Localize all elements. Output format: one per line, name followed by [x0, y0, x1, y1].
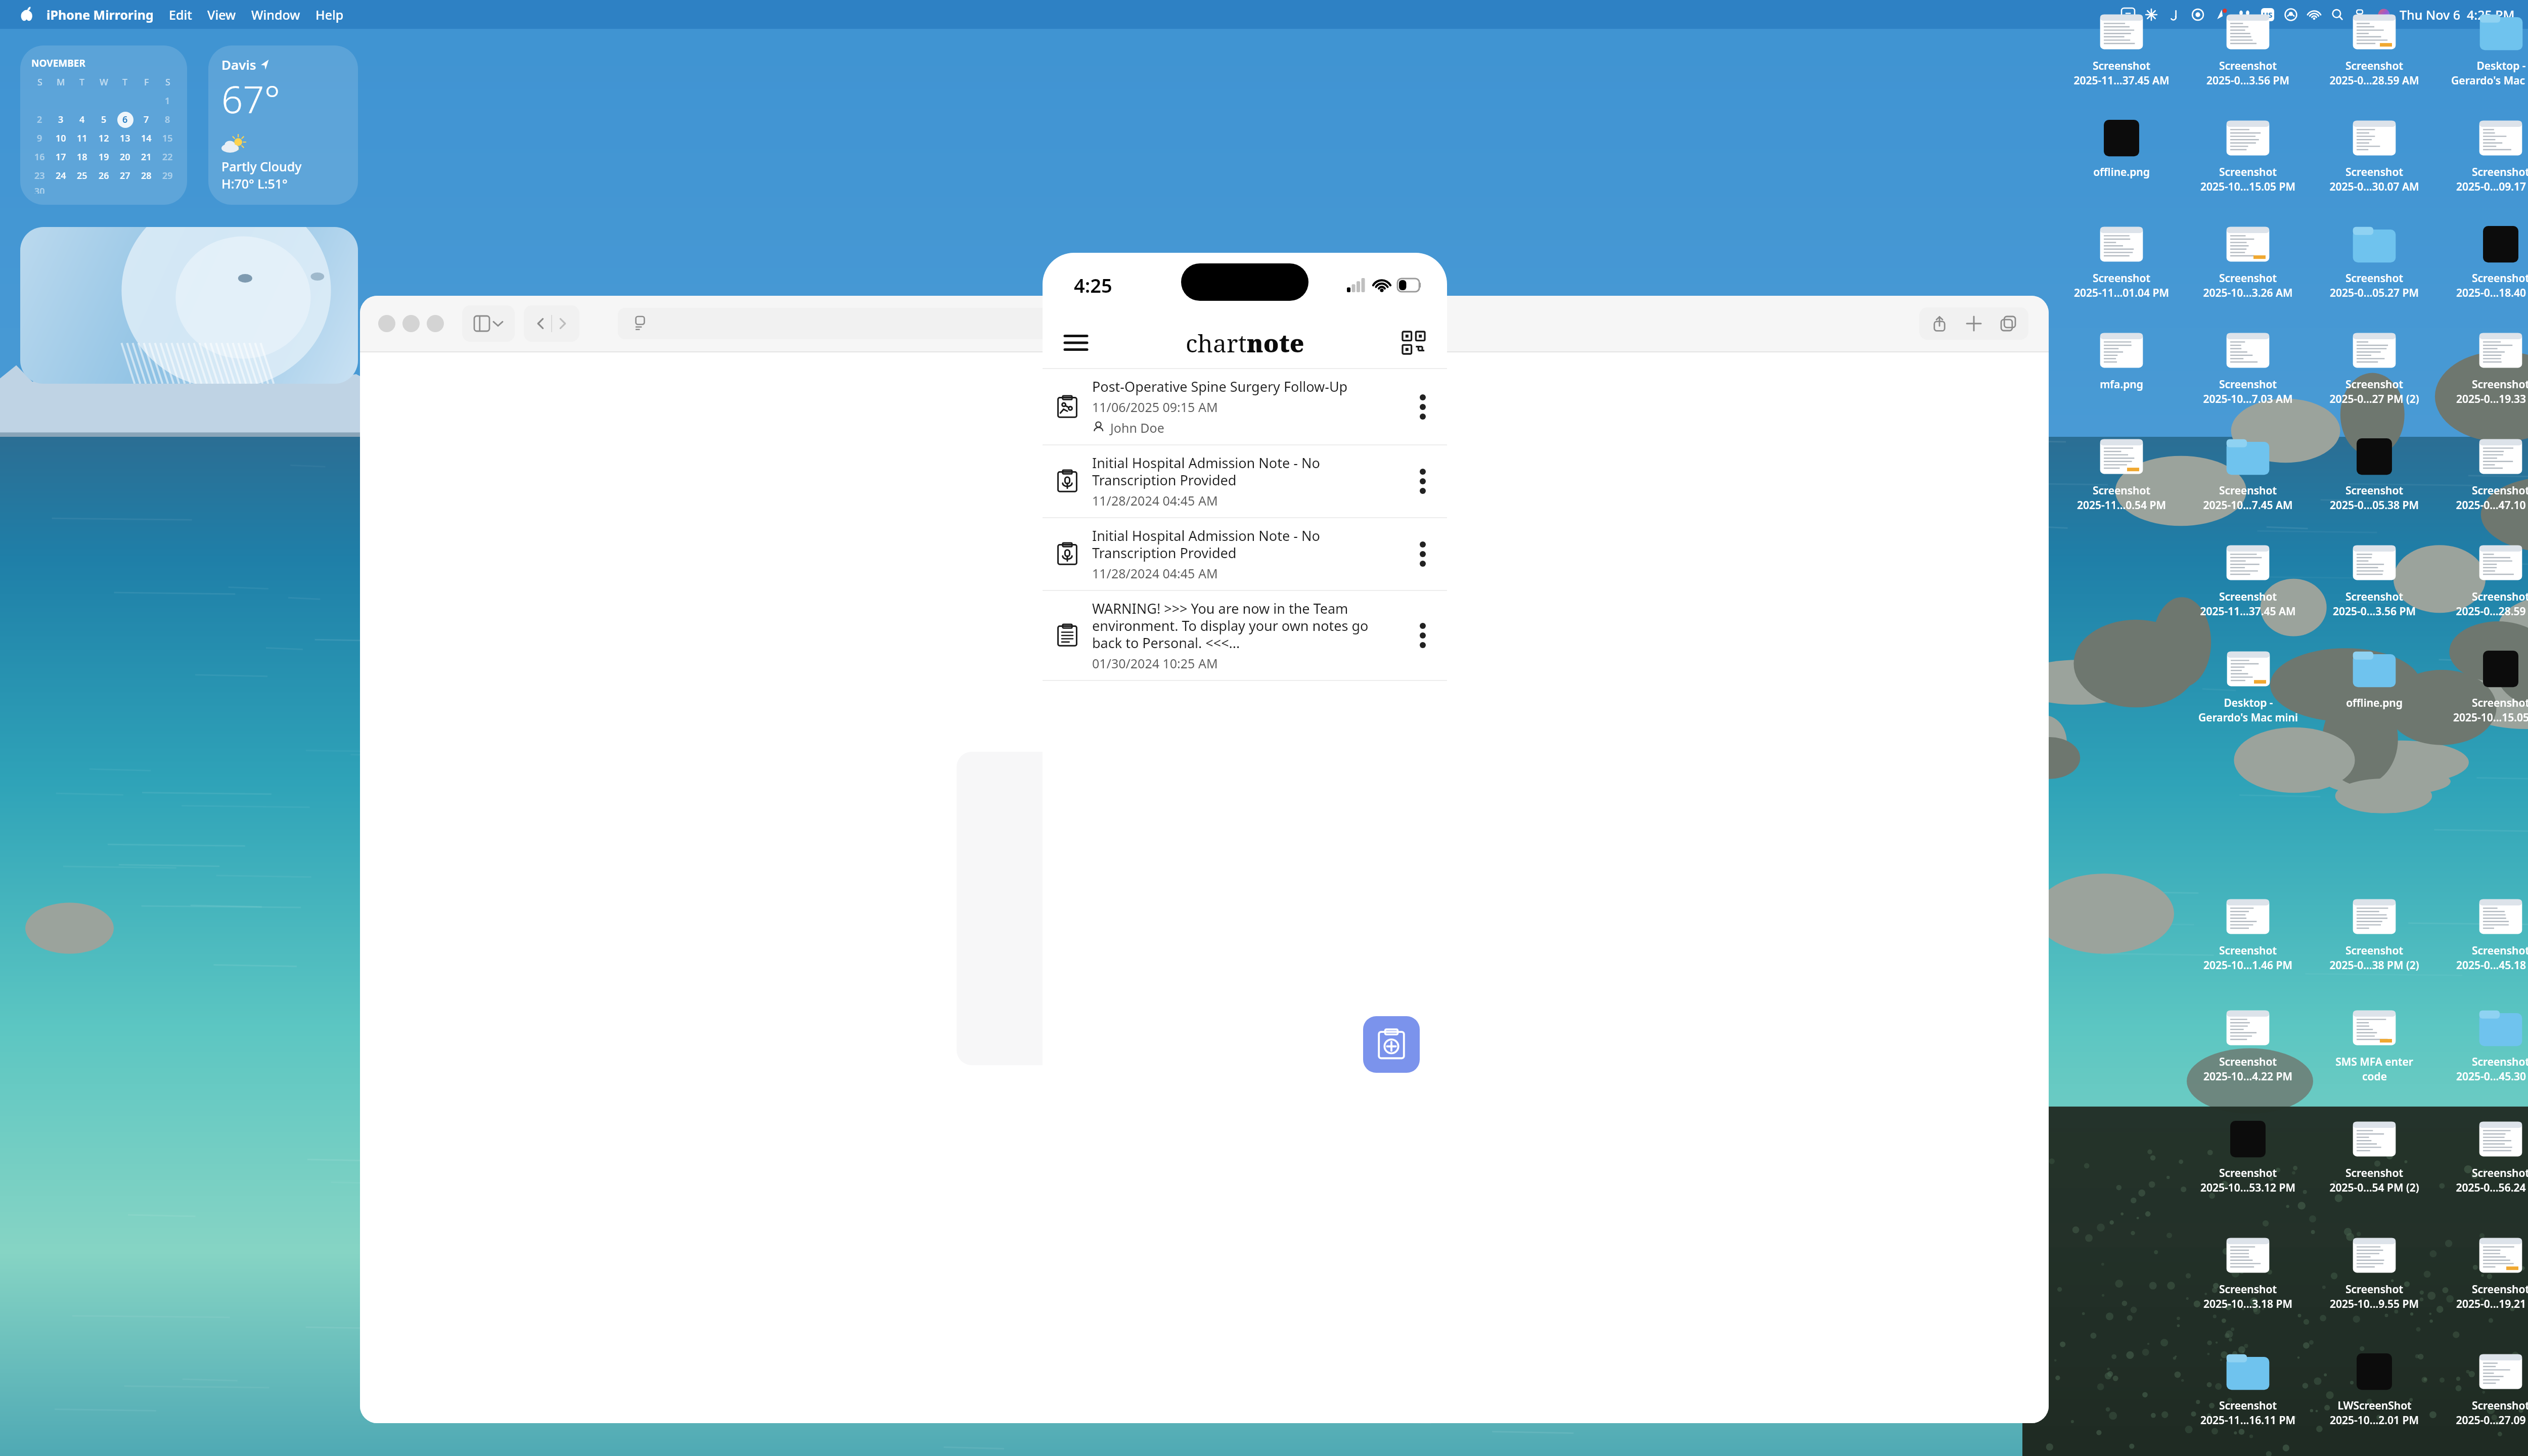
button[interactable]: Desktop - Gerardo's Mac mini	[2440, 10, 2528, 131]
button[interactable]: More options	[1398, 379, 1447, 435]
staticText: Screenshot	[2345, 271, 2403, 286]
button[interactable]: Post-Operative Spine Surgery Follow-Up	[1043, 369, 1447, 444]
button[interactable]: Screenshot 2025-0...18.40 PM	[2440, 222, 2528, 344]
button[interactable]: Screenshot 2025-10...53.12 PM	[2187, 1117, 2309, 1239]
staticText: Screenshot	[2219, 1055, 2277, 1069]
button[interactable]: Menu bar item 2	[2144, 7, 2159, 22]
button[interactable]: Menu bar item 10	[2330, 7, 2345, 22]
button[interactable]: Menu bar item 9	[2307, 7, 2322, 22]
staticText: Help	[315, 6, 344, 23]
button[interactable]: More options	[1398, 526, 1447, 582]
staticText: Screenshot	[2345, 483, 2403, 498]
staticText: 10	[56, 132, 66, 145]
button[interactable]: New note	[1363, 1016, 1420, 1073]
button[interactable]: Screenshot 2025-11...16.11 PM	[2187, 1350, 2309, 1456]
button[interactable]: Menu bar item 3	[2167, 7, 2182, 22]
button[interactable]: Screenshot 2025-10...9.55 PM	[2314, 1234, 2435, 1355]
button[interactable]: mfa.png	[2061, 329, 2182, 450]
button[interactable]: SMS MFA enter code	[2314, 1006, 2435, 1127]
button[interactable]: Screenshot 2025-10...7.03 AM	[2187, 329, 2309, 450]
button[interactable]: Screenshot 2025-10...7.45 AM	[2187, 435, 2309, 556]
button[interactable]: Menu bar item 6	[2237, 7, 2252, 22]
button[interactable]: Screenshot 2025-0...3.56 PM	[2187, 10, 2309, 131]
staticText: LWScreenShot	[2337, 1398, 2412, 1413]
button[interactable]: Screenshot 2025-0...38 PM (2)	[2314, 895, 2435, 1016]
button[interactable]: Edit	[169, 6, 192, 23]
button[interactable]: Window control	[427, 315, 444, 332]
button[interactable]: Screenshot 2025-10...15.05 PM	[2187, 116, 2309, 238]
button[interactable]: Menu bar item 8	[2283, 7, 2298, 22]
button[interactable]: Menu bar item 1	[2120, 7, 2136, 22]
button[interactable]	[20, 227, 358, 384]
button[interactable]: Window control	[402, 315, 420, 332]
staticText: 2025-0...27 PM (2)	[2329, 392, 2419, 406]
button[interactable]: Screenshot 2025-0...28.59 AM	[2440, 541, 2528, 662]
button[interactable]: Screenshot 2025-0...05.27 PM	[2314, 222, 2435, 344]
button[interactable]: Screenshot 2025-10...4.22 PM	[2187, 1006, 2309, 1127]
button[interactable]: Screenshot 2025-0...19.33 PM	[2440, 329, 2528, 450]
button[interactable]: Screenshot 2025-11...37.45 AM	[2187, 541, 2309, 662]
button[interactable]: Menu bar item 4	[2190, 7, 2205, 22]
button[interactable]: Menu bar item 11	[2353, 7, 2368, 22]
button[interactable]: Screenshot 2025-0...45.30 PM	[2440, 1006, 2528, 1127]
button[interactable]: Help	[315, 6, 344, 23]
button[interactable]: New tab	[1963, 312, 1985, 335]
button[interactable]: Screenshot 2025-0...27.09 AM	[2440, 1350, 2528, 1456]
staticText: 2025-10...4.22 PM	[2203, 1069, 2292, 1084]
button[interactable]: Screenshot 2025-0...30.07 AM	[2314, 116, 2435, 238]
button[interactable]: Screenshot 2025-0...45.18 PM	[2440, 895, 2528, 1016]
button[interactable]: Menu	[1061, 328, 1091, 358]
button[interactable]: a	[957, 752, 1290, 1065]
button[interactable]: Menu bar item 7	[2260, 7, 2275, 22]
button[interactable]: Screenshot 2025-0...54 PM (2)	[2314, 1117, 2435, 1239]
button[interactable]: Screenshot 2025-10...3.26 AM	[2187, 222, 2309, 344]
button[interactable]: Share	[1928, 312, 1951, 335]
button[interactable]: Initial Hospital Admission Note - No Tra…	[1043, 445, 1447, 517]
button[interactable]: Screenshot 2025-11...01.04 PM	[2061, 222, 2182, 344]
button[interactable]: offline.png	[2061, 116, 2182, 238]
button[interactable]: iPhone Mirroring	[47, 6, 154, 23]
button[interactable]: Screenshot 2025-0...09.17 PM	[2440, 116, 2528, 238]
button[interactable]	[618, 308, 1265, 339]
button[interactable]: NOVEMBER	[20, 45, 187, 205]
button[interactable]: Screenshot 2025-0...47.10 AM	[2440, 435, 2528, 556]
button[interactable]: Menu bar item 12	[2376, 7, 2391, 22]
button[interactable]: Scan QR code	[1398, 328, 1429, 358]
staticText: Partly Cloudy	[221, 158, 302, 175]
button[interactable]: Screenshot 2025-10...15.05 PM	[2440, 647, 2528, 768]
staticText: Screenshot	[2472, 1055, 2528, 1069]
button[interactable]: Show tabs	[1997, 312, 2019, 335]
button[interactable]: Screenshot 2025-11...37.45 AM	[2061, 10, 2182, 131]
staticText: 2025-0...19.33 PM	[2456, 392, 2528, 406]
button[interactable]: More options	[1398, 608, 1447, 663]
button[interactable]: Desktop - Gerardo's Mac mini	[2187, 647, 2309, 768]
button[interactable]: Screenshot 2025-11...0.54 PM	[2061, 435, 2182, 556]
button[interactable]: Screenshot 2025-0...27 PM (2)	[2314, 329, 2435, 450]
button[interactable]: Screenshot 2025-0...19.21 PM	[2440, 1234, 2528, 1355]
staticText: 2025-10...7.45 AM	[2203, 498, 2293, 513]
button[interactable]: offline.png	[2314, 647, 2435, 768]
button[interactable]: Menu bar item 5	[2214, 7, 2229, 22]
button[interactable]: Window	[251, 6, 300, 23]
button[interactable]: Screenshot 2025-0...28.59 AM	[2314, 10, 2435, 131]
button[interactable]: Reload	[1299, 307, 1332, 340]
button[interactable]: Initial Hospital Admission Note - No Tra…	[1043, 518, 1447, 590]
button[interactable]: Davis	[208, 45, 358, 205]
button[interactable]: Screenshot 2025-0...56.24 AM	[2440, 1117, 2528, 1239]
button[interactable]: WARNING! >>> You are now in the Team env…	[1043, 591, 1447, 680]
button[interactable]: LWScreenShot 2025-10...2.01 PM	[2314, 1350, 2435, 1456]
button[interactable]	[524, 305, 579, 342]
button[interactable]: Screenshot 2025-0...05.38 PM	[2314, 435, 2435, 556]
button[interactable]: View	[207, 6, 236, 23]
button[interactable]: Window control	[378, 315, 395, 332]
staticText: 21	[141, 151, 152, 163]
staticText: 26	[99, 169, 109, 182]
staticText: Screenshot	[2472, 271, 2528, 286]
button[interactable]: Screenshot 2025-10...1.46 PM	[2187, 895, 2309, 1016]
button[interactable]	[462, 305, 515, 342]
button[interactable]: Screenshot 2025-0...3.56 PM	[2314, 541, 2435, 662]
button[interactable]: More options	[1398, 453, 1447, 509]
button[interactable]: Screenshot 2025-10...3.18 PM	[2187, 1234, 2309, 1355]
